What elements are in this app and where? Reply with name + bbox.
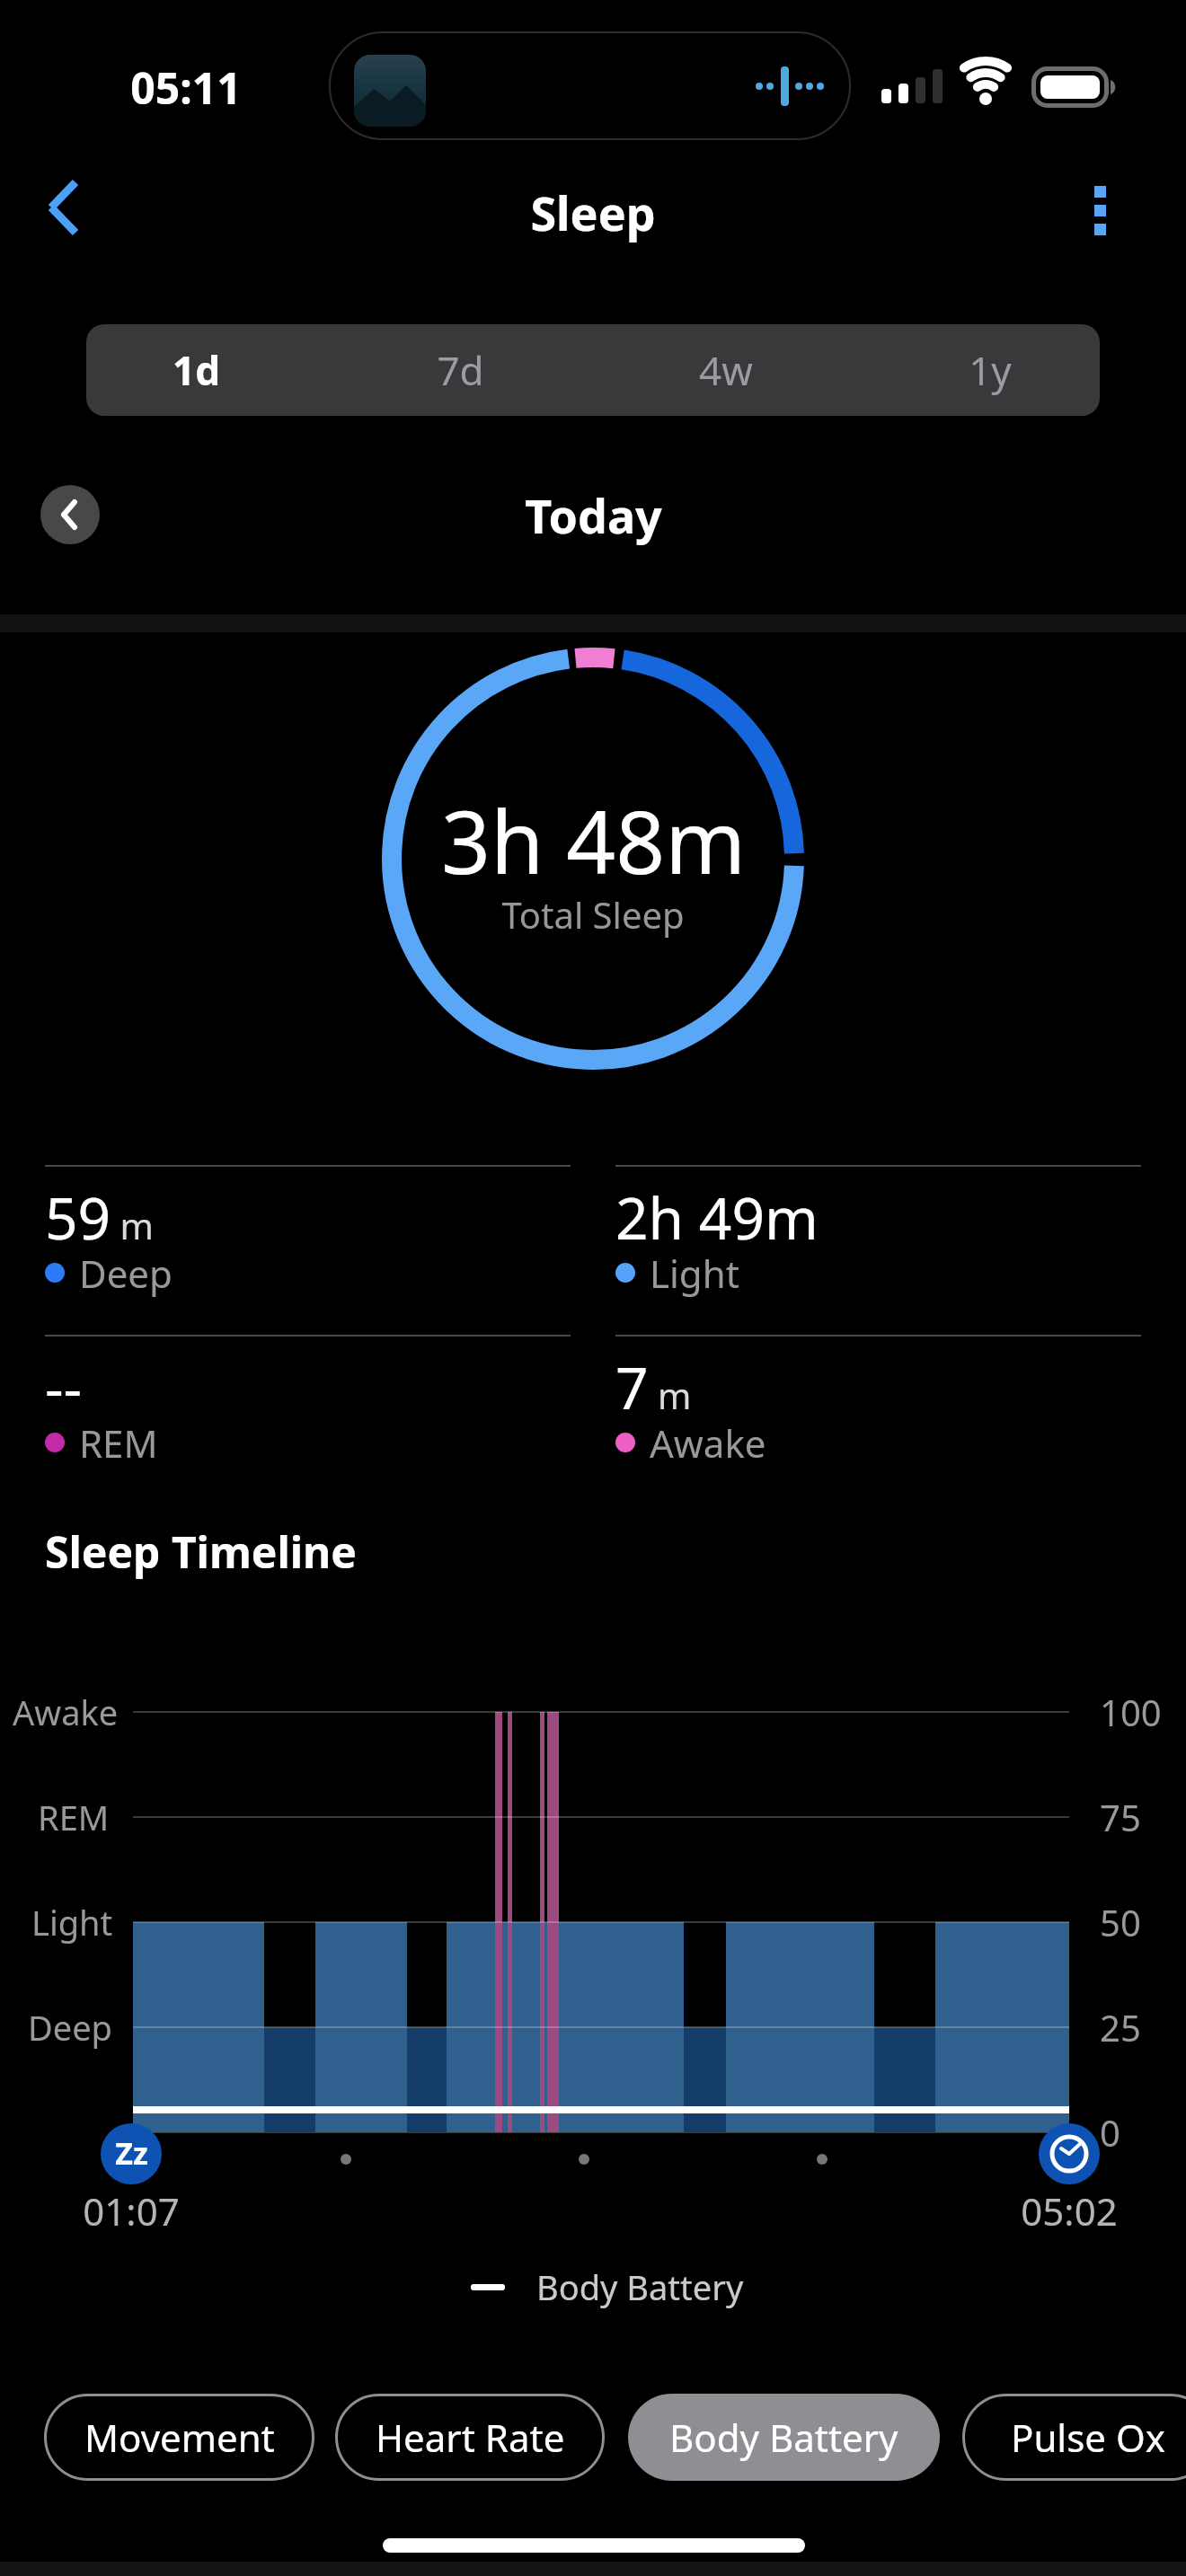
button[interactable]: [86, 324, 340, 416]
staticText: 75: [1100, 1793, 1141, 1841]
button[interactable]: [1067, 175, 1132, 247]
staticText: 7d: [437, 343, 484, 397]
button[interactable]: Pulse Ox: [962, 2394, 1186, 2481]
staticText: 0: [1100, 2108, 1120, 2157]
staticText: Pulse Ox: [1011, 2412, 1165, 2463]
staticText: 25: [1100, 2003, 1141, 2051]
staticText: 1y: [969, 343, 1012, 397]
staticText: 01:07: [83, 2185, 180, 2236]
staticText: 05:02: [1021, 2185, 1118, 2236]
button[interactable]: Body Battery: [628, 2394, 940, 2481]
staticText: Zz: [115, 2132, 148, 2174]
staticText: Body Battery: [669, 2412, 898, 2463]
staticText: Light: [31, 1899, 113, 1945]
staticText: 100: [1100, 1688, 1162, 1736]
staticText: Awake: [650, 1417, 766, 1469]
button[interactable]: [593, 324, 846, 416]
button[interactable]: [27, 175, 99, 247]
staticText: REM: [79, 1417, 158, 1469]
staticText: --: [45, 1348, 83, 1426]
staticText: Awake: [13, 1689, 119, 1735]
staticText: 50: [1100, 1898, 1141, 1946]
staticText: 2h 49m: [615, 1178, 819, 1257]
staticText: 1d: [173, 343, 220, 397]
staticText: Total Sleep: [501, 890, 685, 939]
staticText: 7 m: [615, 1348, 692, 1426]
staticText: Today: [525, 483, 662, 547]
staticText: REM: [38, 1794, 110, 1840]
staticText: Sleep: [530, 181, 656, 244]
staticText: 59 m: [45, 1178, 155, 1257]
button[interactable]: Heart Rate: [335, 2394, 605, 2481]
staticText: Body Battery: [536, 2263, 744, 2310]
staticText: 3h 48m: [441, 781, 746, 899]
staticText: Light: [650, 1248, 739, 1299]
button[interactable]: [340, 324, 593, 416]
staticText: Movement: [84, 2412, 275, 2463]
button[interactable]: [40, 485, 100, 544]
button[interactable]: Movement: [44, 2394, 314, 2481]
staticText: Heart Rate: [376, 2412, 565, 2463]
button[interactable]: [846, 324, 1100, 416]
staticText: 4w: [699, 343, 753, 397]
staticText: Sleep Timeline: [45, 1522, 357, 1581]
staticText: Deep: [79, 1248, 173, 1299]
staticText: 05:11: [130, 58, 242, 117]
staticText: Deep: [28, 2004, 112, 2051]
